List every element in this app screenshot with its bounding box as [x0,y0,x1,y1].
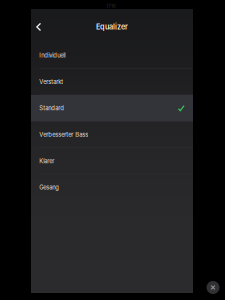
button[interactable]: Verstärkt [31,69,193,95]
button[interactable]: Back [31,19,47,35]
button[interactable]: Verbesserter Bass [31,121,193,148]
staticText: Verbesserter Bass [39,131,88,138]
staticText: 17:16 [106,3,116,9]
staticText: Verstärkt [39,78,63,85]
button[interactable]: Standard [31,95,193,121]
staticText: Equalizer [96,22,128,31]
staticText: Gesang [39,184,59,191]
button[interactable]: Individuell [31,42,193,69]
staticText: Standard [39,105,64,112]
staticText: Klarer [39,157,54,165]
button[interactable]: Close [206,281,219,294]
button[interactable]: Klarer [31,148,193,174]
button[interactable]: Gesang [31,174,193,201]
staticText: Individuell [39,52,65,59]
